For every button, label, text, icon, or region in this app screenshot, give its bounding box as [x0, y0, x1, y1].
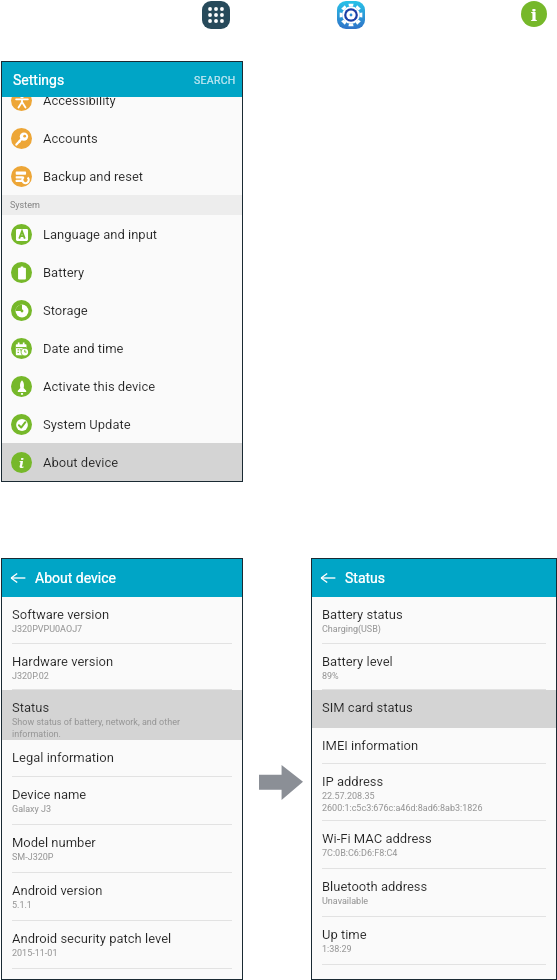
- staticText: Status: [12, 700, 50, 715]
- button[interactable]: IP address: [312, 764, 556, 821]
- staticText: Android security patch level: [12, 931, 172, 946]
- staticText: Backup and reset: [43, 169, 144, 184]
- button[interactable]: Date and time: [2, 329, 242, 367]
- button[interactable]: Wi-Fi MAC address: [312, 821, 556, 869]
- button[interactable]: Model number: [2, 825, 242, 873]
- button[interactable]: Android version: [2, 873, 242, 921]
- staticText: Settings: [13, 72, 65, 88]
- button[interactable]: Settings: [337, 1, 365, 29]
- staticText: System Update: [43, 417, 131, 432]
- staticText: Battery level: [322, 654, 393, 669]
- staticText: Legal information: [12, 750, 114, 765]
- staticText: 22.57.208.35 2600:1:c5c3:676c:a46d:8ad6:…: [322, 791, 483, 813]
- staticText: SM-J320P: [12, 852, 54, 863]
- staticText: 1:38:29: [322, 944, 352, 955]
- button[interactable]: Back: [10, 570, 26, 586]
- staticText: System: [10, 200, 40, 211]
- staticText: Up time: [322, 927, 367, 942]
- button[interactable]: Info: [521, 1, 547, 27]
- staticText: Hardware version: [12, 654, 114, 669]
- staticText: Storage: [43, 303, 88, 318]
- staticText: IMEI information: [322, 738, 419, 753]
- staticText: Bluetooth address: [322, 879, 428, 894]
- button[interactable]: Back: [320, 570, 336, 586]
- staticText: Android version: [12, 883, 103, 898]
- staticText: Model number: [12, 835, 96, 850]
- staticText: 5.1.1: [12, 900, 32, 911]
- button[interactable]: Up time: [312, 917, 556, 965]
- staticText: Accessibility: [43, 93, 116, 108]
- staticText: Battery status: [322, 607, 403, 622]
- button[interactable]: Status: [2, 690, 242, 740]
- button[interactable]: i: [2, 443, 242, 481]
- staticText: Accounts: [43, 131, 98, 146]
- button[interactable]: Accounts: [2, 119, 242, 157]
- button[interactable]: Accessibility: [2, 81, 242, 119]
- button[interactable]: Battery: [2, 253, 242, 291]
- button[interactable]: Apps: [202, 1, 230, 29]
- button[interactable]: Legal information: [2, 740, 242, 777]
- staticText: Language and input: [43, 227, 158, 242]
- staticText: SEARCH: [194, 74, 236, 86]
- staticText: SIM card status: [322, 700, 413, 715]
- staticText: IP address: [322, 774, 384, 789]
- button[interactable]: IMEI information: [312, 728, 556, 764]
- staticText: Wi-Fi MAC address: [322, 831, 432, 846]
- staticText: About device: [43, 455, 119, 470]
- staticText: J320P.02: [12, 671, 49, 682]
- button[interactable]: SIM card status: [312, 690, 556, 728]
- staticText: About device: [35, 570, 116, 586]
- button[interactable]: Battery level: [312, 644, 556, 690]
- staticText: Unavailable: [322, 896, 369, 907]
- button[interactable]: Backup and reset: [2, 157, 242, 195]
- staticText: 89%: [322, 671, 339, 682]
- button[interactable]: Software version: [2, 597, 242, 644]
- staticText: Status: [345, 570, 386, 586]
- staticText: 7C:0B:C6:D6:F8:C4: [322, 848, 398, 859]
- button[interactable]: System Update: [2, 405, 242, 443]
- staticText: Device name: [12, 787, 87, 802]
- staticText: Battery: [43, 265, 85, 280]
- button[interactable]: Bluetooth address: [312, 869, 556, 917]
- staticText: Galaxy J3: [12, 804, 52, 815]
- staticText: i: [19, 454, 24, 472]
- staticText: Activate this device: [43, 379, 156, 394]
- button[interactable]: Storage: [2, 291, 242, 329]
- staticText: Software version: [12, 607, 110, 622]
- button[interactable]: Language and input: [2, 215, 242, 253]
- staticText: Charging(USB): [322, 624, 381, 635]
- button[interactable]: Device name: [2, 777, 242, 825]
- staticText: J320PVPU0AOJ7: [12, 624, 83, 635]
- staticText: 2015-11-01: [12, 948, 58, 959]
- button[interactable]: Battery status: [312, 597, 556, 644]
- button[interactable]: Activate this device: [2, 367, 242, 405]
- staticText: Show status of battery, network, and oth…: [12, 717, 180, 739]
- button[interactable]: Hardware version: [2, 644, 242, 690]
- button[interactable]: Android security patch level: [2, 921, 242, 969]
- staticText: Date and time: [43, 341, 124, 356]
- staticText: i: [531, 3, 537, 26]
